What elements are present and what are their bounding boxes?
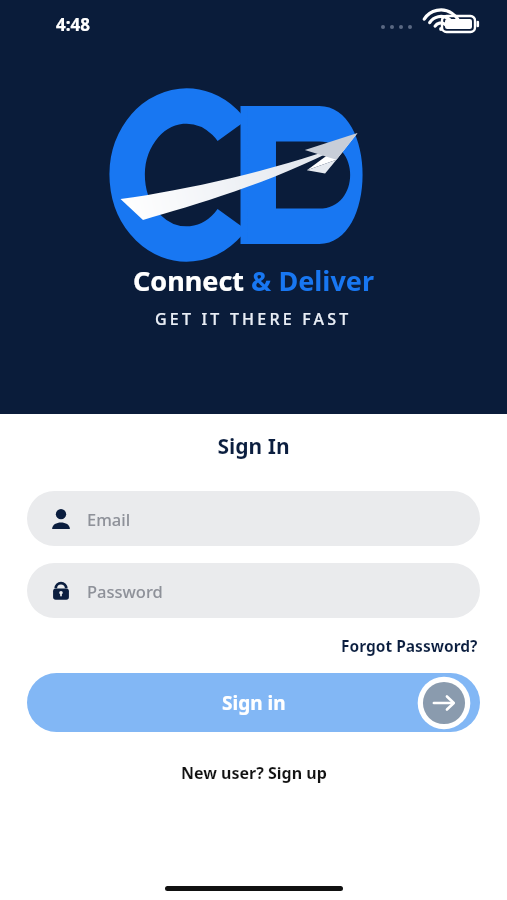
staticText: Password: [87, 580, 163, 602]
staticText: Sign in: [222, 690, 286, 716]
staticText: Connect & Deliver: [133, 262, 374, 299]
staticText: GET IT THERE FAST: [155, 308, 352, 330]
button[interactable]: Email: [27, 491, 480, 546]
button[interactable]: New user? Sign up: [175, 758, 333, 788]
staticText: Forgot Password?: [341, 635, 478, 656]
staticText: Email: [87, 508, 131, 530]
button[interactable]: Sign in: [27, 673, 480, 732]
other: Submit: [416, 675, 472, 731]
button[interactable]: Password: [27, 563, 480, 618]
button[interactable]: Forgot Password?: [339, 632, 480, 659]
staticText: Sign In: [0, 432, 507, 461]
staticText: 4:48: [56, 13, 90, 36]
staticText: New user? Sign up: [181, 762, 327, 784]
